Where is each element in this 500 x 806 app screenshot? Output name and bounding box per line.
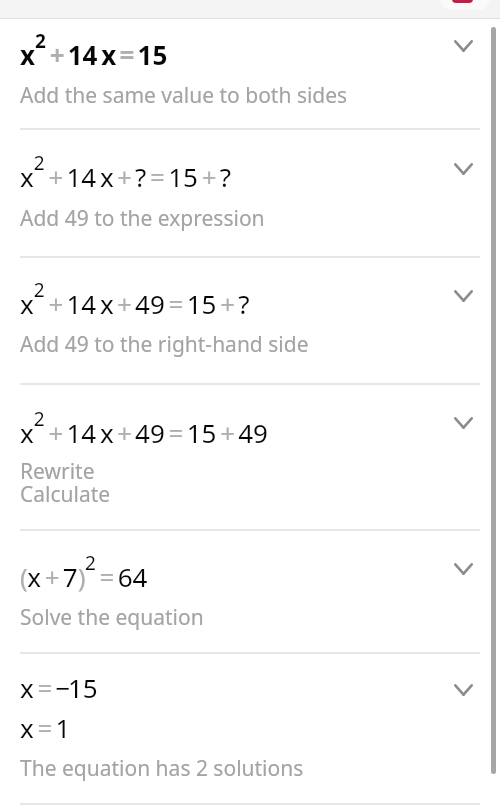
button[interactable] bbox=[0, 257, 500, 383]
staticText: Add 49 to the right-hand side bbox=[20, 330, 309, 359]
staticText: x2 + 14 x + ? = 15 + ? bbox=[20, 150, 232, 194]
button[interactable]: Expand step bbox=[441, 274, 485, 318]
staticText: Calculate bbox=[20, 480, 111, 509]
staticText: x = −15 bbox=[20, 670, 98, 705]
staticText: x2 + 14 x + 49 = 15 + 49 bbox=[20, 406, 268, 450]
staticText: Rewrite bbox=[20, 457, 95, 486]
staticText: Add the same value to both sides bbox=[20, 81, 348, 110]
button[interactable]: Expand step bbox=[441, 668, 485, 712]
button[interactable] bbox=[0, 653, 500, 803]
button[interactable] bbox=[0, 19, 500, 128]
button[interactable] bbox=[0, 530, 500, 652]
button[interactable]: Expand step bbox=[441, 147, 485, 191]
button[interactable]: Expand step bbox=[441, 401, 485, 445]
staticText: (x + 7)2 = 64 bbox=[20, 550, 148, 594]
button[interactable] bbox=[0, 129, 500, 256]
button[interactable]: Expand step bbox=[441, 547, 485, 591]
button[interactable] bbox=[0, 384, 500, 529]
staticText: x2 + 14 x + 49 = 15 + ? bbox=[20, 277, 250, 321]
button[interactable]: Expand step bbox=[441, 24, 485, 68]
staticText: The equation has 2 solutions bbox=[20, 754, 304, 783]
staticText: Add 49 to the expression bbox=[20, 204, 265, 233]
button[interactable]: Upgrade to Plus bbox=[440, 0, 490, 10]
staticText: Solve the equation bbox=[20, 603, 204, 632]
staticText: x2 + 14 x = 15 bbox=[20, 28, 168, 72]
staticText: x = 1 bbox=[20, 710, 71, 745]
